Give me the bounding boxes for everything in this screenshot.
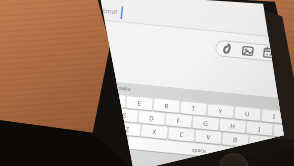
button[interactable]: Phone on a wooden desk showing an email …	[0, 0, 294, 166]
